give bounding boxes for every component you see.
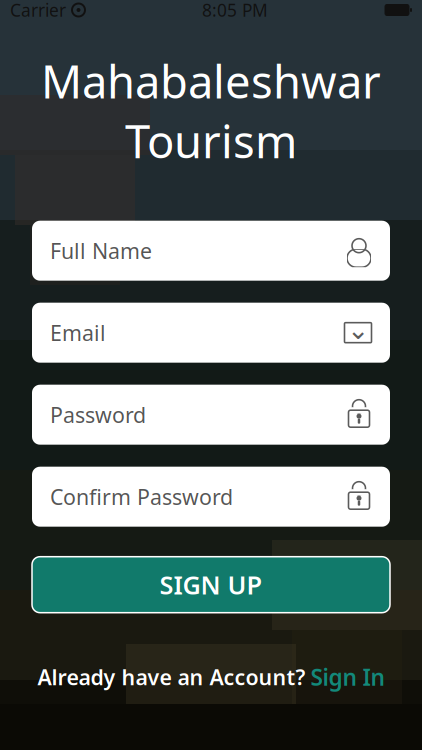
staticText: Sign In bbox=[310, 662, 384, 692]
staticText: Carrier bbox=[10, 0, 66, 21]
staticText: Email bbox=[50, 318, 106, 347]
staticText: Full Name bbox=[50, 236, 152, 265]
button[interactable]: Password bbox=[32, 385, 390, 445]
staticText: Already have an Account? bbox=[37, 663, 305, 691]
button[interactable]: Email bbox=[32, 303, 390, 363]
staticText: SIGN UP bbox=[159, 568, 262, 601]
staticText: Tourism bbox=[125, 110, 297, 171]
button[interactable]: Already have an Account? bbox=[37, 662, 384, 692]
button[interactable]: Confirm Password bbox=[32, 467, 390, 527]
staticText: Confirm Password bbox=[50, 482, 233, 511]
staticText: ⌄ bbox=[347, 315, 369, 345]
staticText: 8:05 PM bbox=[202, 0, 268, 21]
button[interactable]: Full Name bbox=[32, 221, 390, 281]
staticText: Mahabaleshwar bbox=[41, 50, 381, 112]
staticText: Password bbox=[50, 400, 146, 429]
button[interactable]: SIGN UP bbox=[32, 557, 390, 613]
